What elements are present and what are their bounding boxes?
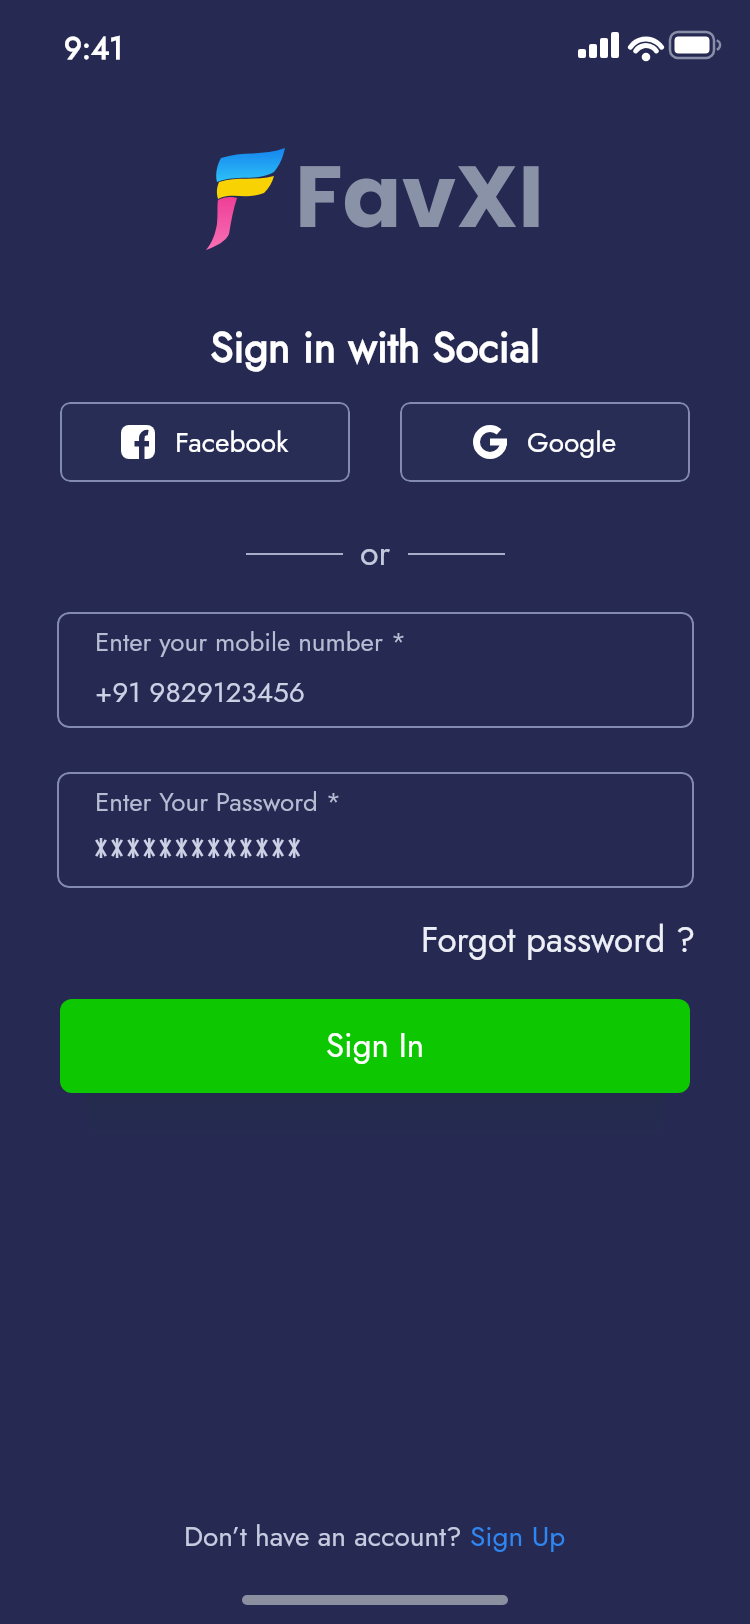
staticText: Sign in with Social: [0, 317, 750, 378]
button[interactable]: Facebook: [60, 402, 350, 482]
button[interactable]: Enter Your Password *: [57, 772, 694, 888]
staticText: Sign In: [326, 1022, 425, 1070]
button[interactable]: Enter your mobile number *: [57, 612, 694, 728]
staticText: Google: [527, 422, 617, 462]
staticText: or: [360, 529, 391, 578]
button[interactable]: Sign Up: [470, 1516, 566, 1556]
staticText: 9:41: [64, 26, 124, 71]
staticText: Enter Your Password *: [95, 783, 342, 821]
staticText: Facebook: [175, 422, 289, 462]
staticText: +91 9829123456: [95, 672, 305, 712]
staticText: FavXI: [295, 136, 544, 258]
button[interactable]: Google: [400, 402, 690, 482]
button[interactable]: Sign In: [60, 999, 690, 1093]
staticText: Don’t have an account?: [184, 1516, 470, 1556]
button[interactable]: Forgot password ?: [421, 915, 696, 966]
staticText: Enter your mobile number *: [95, 623, 407, 661]
